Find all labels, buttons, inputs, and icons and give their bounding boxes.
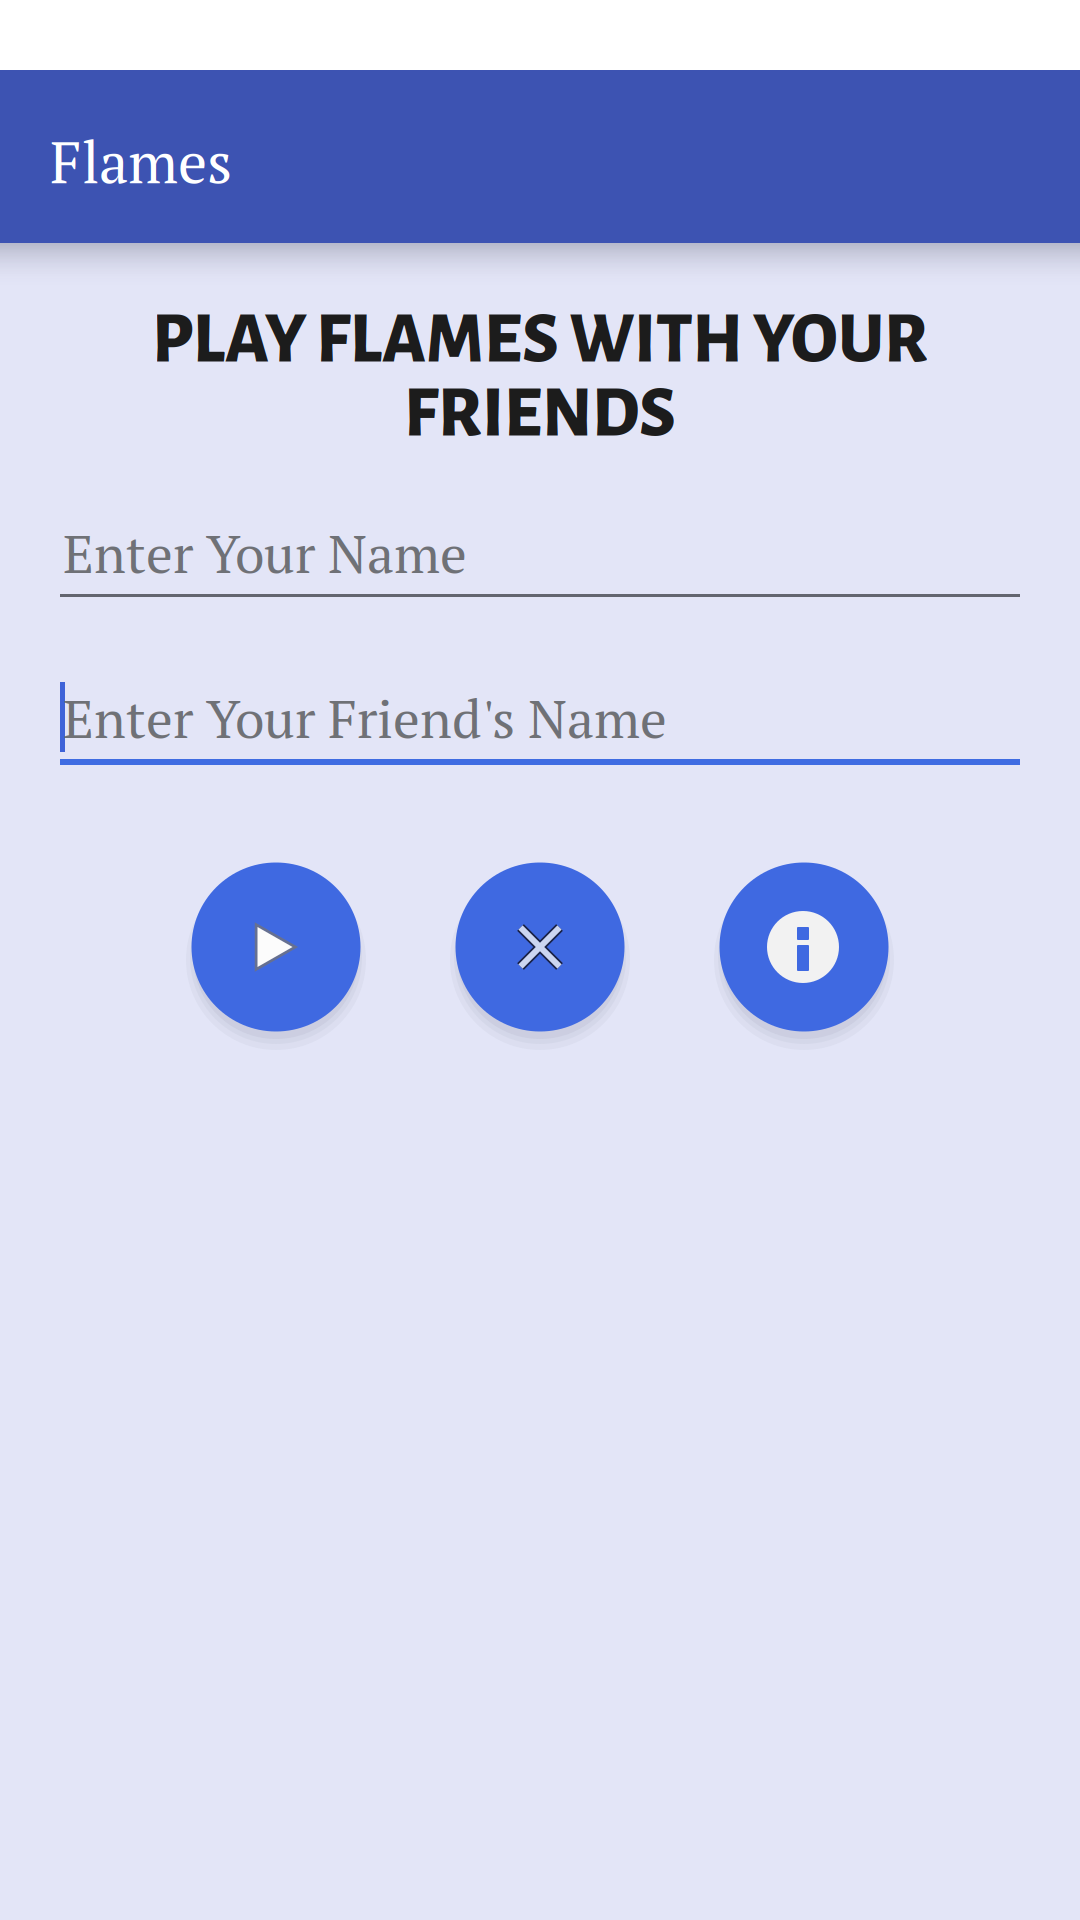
button[interactable]: Enter Your Friend's Name bbox=[60, 692, 1020, 773]
staticText: Enter Your Friend's Name bbox=[63, 683, 667, 753]
button[interactable]: Info bbox=[710, 847, 897, 1047]
button[interactable]: Play bbox=[182, 847, 369, 1047]
staticText: Enter Your Name bbox=[63, 518, 467, 588]
staticText: FRIENDS bbox=[404, 378, 676, 450]
staticText: Flames bbox=[50, 123, 232, 200]
button[interactable]: Clear bbox=[446, 847, 633, 1047]
staticText: PLAY FLAMES WITH YOUR bbox=[152, 304, 928, 376]
button[interactable]: Enter Your Name bbox=[60, 527, 1020, 602]
